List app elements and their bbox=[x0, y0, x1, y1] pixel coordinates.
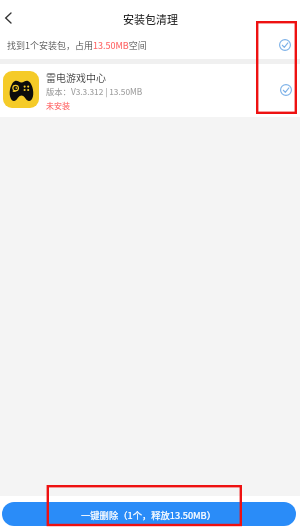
staticText: 未安装 bbox=[46, 100, 70, 112]
button[interactable]: Select item bbox=[276, 36, 294, 54]
button[interactable]: Back bbox=[0, 3, 26, 33]
staticText: 安装包清理 bbox=[123, 11, 178, 27]
button[interactable]: 雷电游戏中心 bbox=[0, 64, 300, 117]
button[interactable]: Select item bbox=[277, 81, 295, 99]
staticText: 雷电游戏中心 bbox=[46, 70, 106, 84]
staticText: 找到1个安装包，占用13.50MB空间 bbox=[7, 39, 147, 52]
staticText: 版本：V3.3.312 | 13.50MB bbox=[46, 85, 143, 97]
button[interactable]: 一键删除（1个，释放13.50MB） bbox=[2, 502, 296, 526]
staticText: 一键删除（1个，释放13.50MB） bbox=[81, 508, 217, 521]
